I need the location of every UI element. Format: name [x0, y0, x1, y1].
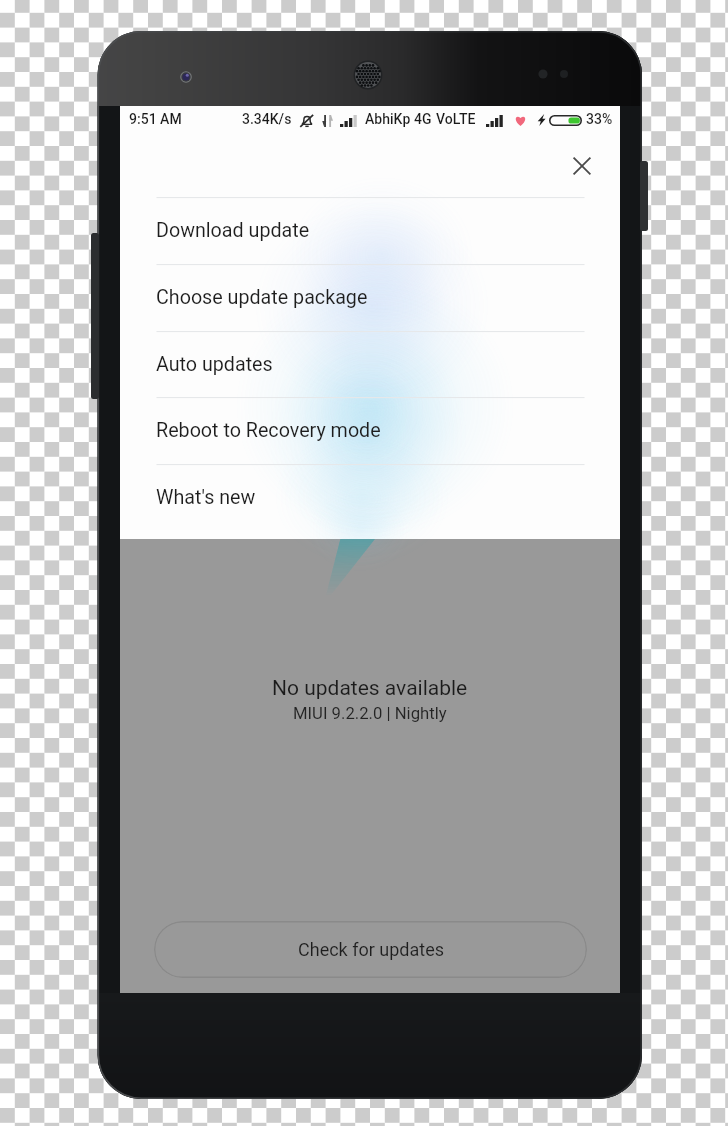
button[interactable]: Choose update package [120, 264, 620, 331]
button[interactable]: Close [560, 144, 604, 188]
staticText: Download update [156, 219, 310, 242]
button[interactable]: Auto updates [120, 331, 620, 398]
button[interactable]: Download update [120, 197, 620, 264]
staticText: Choose update package [156, 286, 368, 309]
staticText: MIUI 9.2.2.0 | Nightly [293, 704, 447, 724]
button[interactable]: What's new [120, 464, 620, 531]
staticText: VoLTE [436, 111, 476, 127]
staticText: AbhiKp [365, 111, 411, 127]
staticText: Auto updates [156, 353, 273, 376]
staticText: 33% [586, 111, 613, 127]
staticText: 3.34K/s [242, 111, 292, 127]
staticText: Reboot to Recovery mode [156, 419, 381, 442]
button[interactable]: Check for updates [154, 921, 587, 978]
button[interactable]: Reboot to Recovery mode [120, 397, 620, 464]
staticText: No updates available [272, 676, 468, 701]
staticText: Check for updates [298, 939, 444, 960]
staticText: 9:51 AM [129, 111, 182, 127]
staticText: What's new [156, 486, 256, 509]
staticText: 4G [414, 111, 432, 127]
